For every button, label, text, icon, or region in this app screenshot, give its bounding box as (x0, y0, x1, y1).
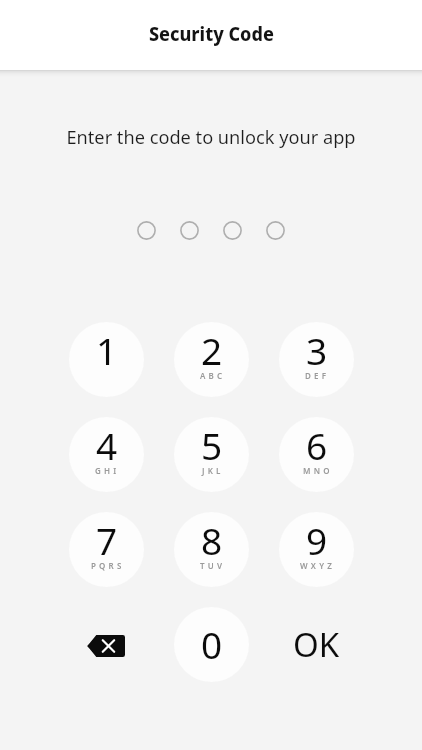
button[interactable]: 4 (69, 417, 144, 492)
staticText: 1 (96, 325, 118, 375)
staticText: 5 (201, 420, 223, 470)
button[interactable]: 1 (69, 322, 144, 397)
button[interactable]: 3 (279, 322, 354, 397)
button[interactable]: 7 (69, 512, 144, 587)
staticText: ABC (200, 370, 226, 381)
staticText: WXYZ (300, 560, 335, 571)
staticText: MNO (303, 465, 333, 476)
staticText: PQRS (91, 560, 125, 571)
staticText: TUV (200, 560, 226, 571)
button[interactable]: 2 (174, 322, 249, 397)
staticText: 9 (306, 515, 328, 565)
button[interactable]: OK (279, 607, 354, 682)
staticText: 3 (306, 325, 328, 375)
button[interactable]: 6 (279, 417, 354, 492)
staticText: DEF (305, 370, 330, 381)
staticText: Security Code (149, 20, 274, 47)
staticText: 8 (201, 515, 223, 565)
button[interactable]: 5 (174, 417, 249, 492)
staticText: GHI (95, 465, 120, 476)
button[interactable]: 8 (174, 512, 249, 587)
staticText: 0 (201, 619, 223, 669)
button[interactable]: 0 (174, 607, 249, 682)
staticText: 6 (306, 420, 328, 470)
staticText: Enter the code to unlock your app (0, 125, 422, 150)
staticText: 4 (96, 420, 118, 470)
staticText: JKL (202, 465, 224, 476)
staticText: 2 (201, 325, 223, 375)
staticText: OK (293, 622, 340, 667)
button[interactable]: 9 (279, 512, 354, 587)
button[interactable]: Backspace (69, 607, 144, 682)
staticText: 7 (96, 515, 118, 565)
